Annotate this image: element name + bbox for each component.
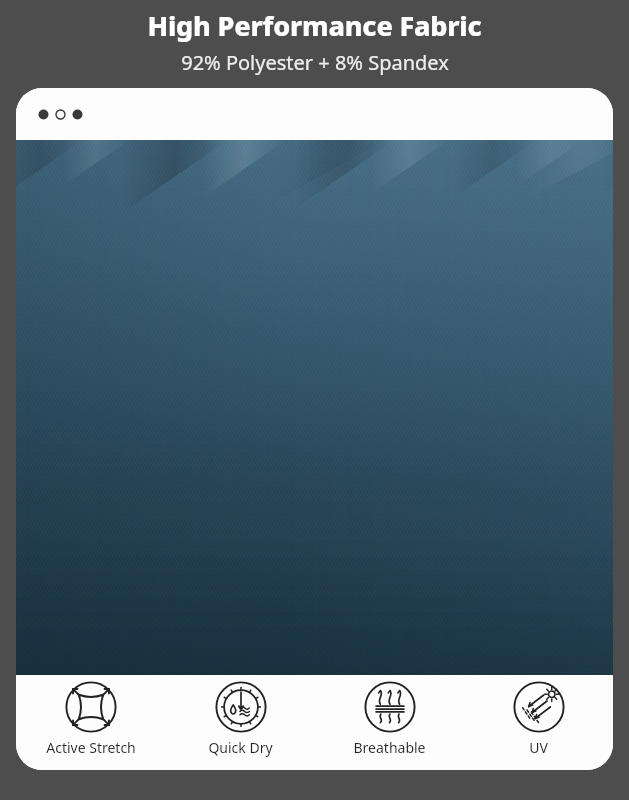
staticText: 92% Polyester + 8% Spandex [181,49,449,76]
staticText: Breathable [353,738,426,757]
button[interactable]: UV [464,675,613,770]
staticText: Quick Dry [208,738,273,757]
button[interactable]: Active Stretch [16,88,613,770]
staticText: High Performance Fabric [147,7,482,44]
staticText: Active Stretch [46,738,136,757]
button[interactable]: Active Stretch [16,675,166,770]
button[interactable]: Quick Dry [166,675,315,770]
button[interactable]: Breathable [315,675,464,770]
staticText: UV [529,738,548,757]
